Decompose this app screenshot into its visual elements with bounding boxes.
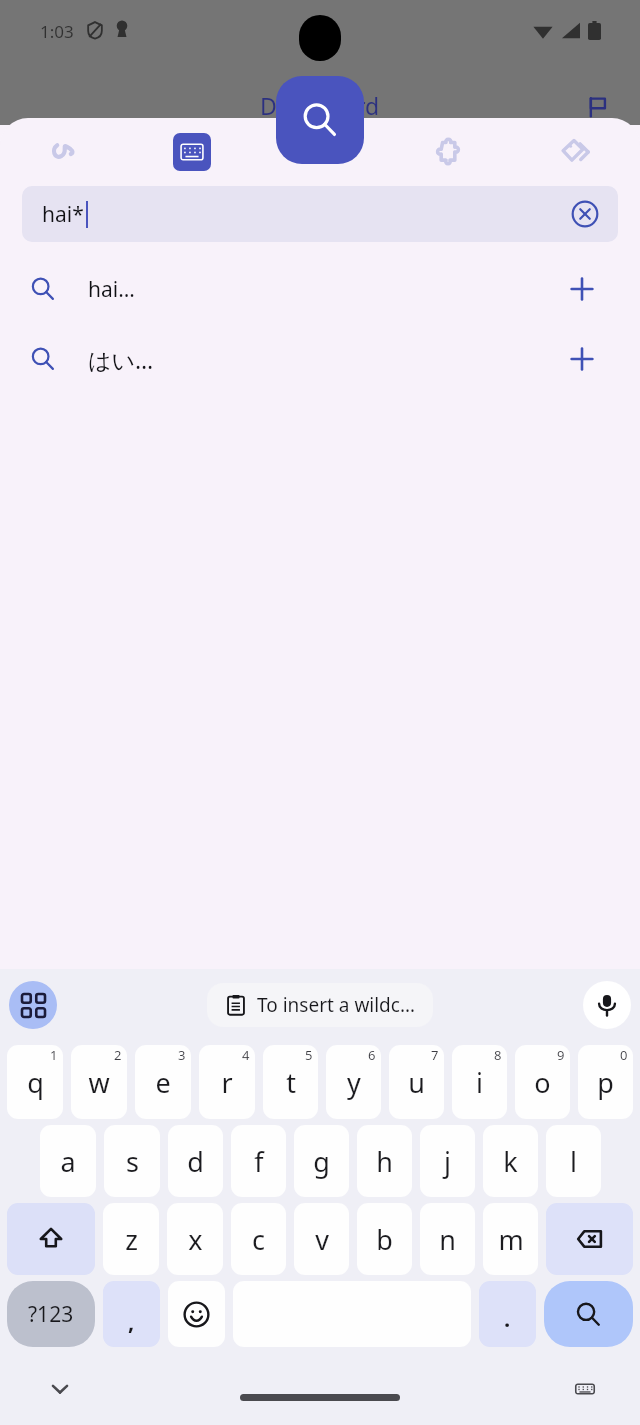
button[interactable]: m — [483, 1203, 538, 1275]
button[interactable]: Search — [276, 76, 364, 164]
button[interactable]: p — [578, 1045, 633, 1119]
staticText: To insert a wildc… — [257, 992, 415, 1018]
button[interactable]: z — [103, 1203, 159, 1275]
button[interactable]: Shift — [7, 1203, 95, 1275]
staticText: 7 — [431, 1046, 439, 1064]
button[interactable]: Extensions — [384, 118, 512, 186]
button[interactable]: x — [167, 1203, 223, 1275]
button[interactable]: e — [135, 1045, 191, 1119]
button[interactable]: Search — [544, 1281, 633, 1347]
button[interactable]: hai* — [22, 186, 618, 242]
staticText: r — [221, 1064, 233, 1101]
button[interactable]: f — [231, 1125, 286, 1197]
button[interactable]: To insert a wildc… — [207, 983, 433, 1027]
staticText: t — [286, 1064, 296, 1101]
button[interactable]: hai… — [0, 254, 640, 324]
staticText: , — [128, 1306, 135, 1336]
staticText: 5 — [305, 1046, 313, 1064]
staticText: 0 — [620, 1046, 628, 1064]
button[interactable]: u — [389, 1045, 444, 1119]
staticText: . — [504, 1303, 511, 1333]
button[interactable]: h — [357, 1125, 412, 1197]
staticText: ?123 — [28, 1300, 74, 1329]
staticText: d — [187, 1143, 204, 1180]
staticText: c — [252, 1221, 265, 1258]
button[interactable]: o — [515, 1045, 570, 1119]
staticText: 3 — [178, 1046, 186, 1064]
staticText: 9 — [557, 1046, 565, 1064]
button[interactable]: w — [71, 1045, 127, 1119]
staticText: u — [408, 1064, 425, 1101]
button[interactable]: . — [479, 1281, 536, 1347]
staticText: o — [534, 1064, 551, 1101]
staticText: e — [155, 1064, 171, 1101]
staticText: p — [597, 1064, 614, 1101]
button[interactable]: , — [103, 1281, 160, 1347]
button[interactable]: ?123 — [7, 1281, 95, 1347]
staticText: hai* — [42, 200, 84, 229]
button[interactable]: Handwriting — [0, 118, 128, 186]
staticText: f — [254, 1143, 264, 1180]
staticText: v — [315, 1221, 329, 1258]
button[interactable]: c — [231, 1203, 286, 1275]
staticText: hai… — [88, 275, 135, 304]
staticText: b — [376, 1221, 393, 1258]
button[interactable]: Add to dictionary — [558, 335, 606, 383]
staticText: h — [376, 1143, 393, 1180]
button[interactable]: Backspace — [546, 1203, 633, 1275]
button[interactable]: k — [483, 1125, 538, 1197]
button[interactable]: y — [326, 1045, 381, 1119]
staticText: a — [60, 1143, 76, 1180]
staticText: z — [125, 1221, 138, 1258]
staticText: i — [476, 1064, 483, 1101]
button[interactable]: i — [452, 1045, 507, 1119]
staticText: n — [439, 1221, 456, 1258]
staticText: 2 — [114, 1046, 122, 1064]
staticText: q — [27, 1064, 44, 1101]
staticText: y — [347, 1064, 361, 1101]
staticText: 4 — [242, 1046, 250, 1064]
staticText: はい… — [88, 344, 154, 375]
staticText: m — [498, 1221, 524, 1258]
staticText: 6 — [368, 1046, 376, 1064]
staticText: g — [313, 1143, 330, 1180]
button[interactable]: j — [420, 1125, 475, 1197]
button[interactable]: More options — [9, 981, 57, 1029]
staticText: 1:03 — [40, 20, 74, 43]
button[interactable]: Clear query — [568, 197, 602, 231]
button[interactable]: r — [199, 1045, 255, 1119]
button[interactable]: Labels — [512, 118, 640, 186]
staticText: x — [188, 1221, 203, 1258]
staticText: k — [503, 1143, 518, 1180]
staticText: s — [126, 1143, 139, 1180]
staticText: Dashboard — [260, 90, 380, 121]
button[interactable]: v — [294, 1203, 349, 1275]
staticText: 8 — [494, 1046, 502, 1064]
button[interactable]: はい… — [0, 324, 640, 394]
button[interactable]: g — [294, 1125, 349, 1197]
button[interactable]: Switch keyboard — [568, 1372, 602, 1406]
button[interactable]: Add to dictionary — [558, 265, 606, 313]
button[interactable]: Voice input — [583, 981, 631, 1029]
staticText: j — [444, 1143, 451, 1180]
staticText: l — [570, 1143, 577, 1180]
button[interactable]: t — [263, 1045, 318, 1119]
button[interactable]: b — [357, 1203, 412, 1275]
button[interactable]: Hide keyboard — [40, 1369, 80, 1409]
button[interactable]: Keyboard — [173, 133, 211, 171]
button[interactable]: q — [7, 1045, 63, 1119]
button[interactable]: l — [546, 1125, 601, 1197]
button[interactable]: s — [104, 1125, 160, 1197]
button[interactable]: d — [168, 1125, 223, 1197]
button[interactable]: Emoji — [168, 1281, 225, 1347]
staticText: 1 — [50, 1046, 58, 1064]
button[interactable]: n — [420, 1203, 475, 1275]
staticText: w — [88, 1064, 110, 1101]
button[interactable]: a — [40, 1125, 96, 1197]
